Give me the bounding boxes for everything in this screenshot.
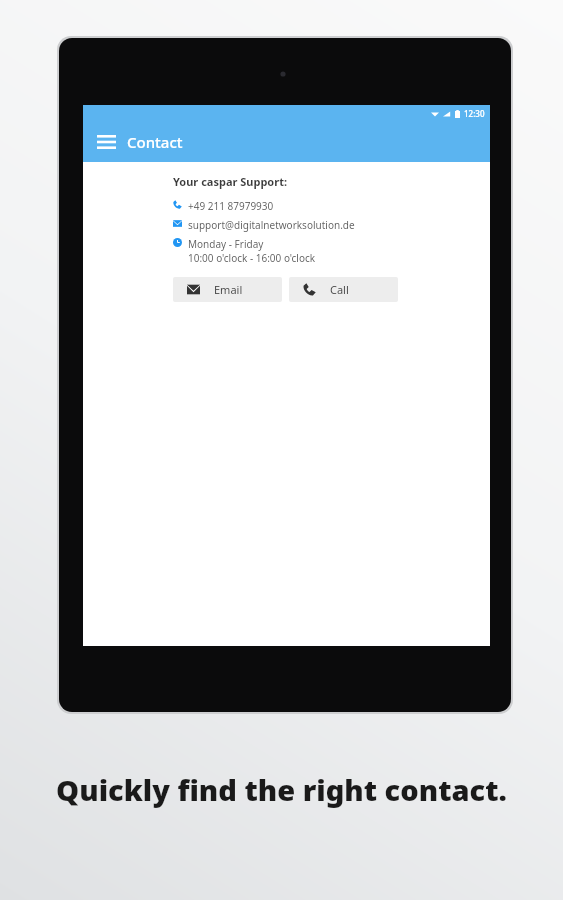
button[interactable]: Open navigation menu: [90, 126, 122, 158]
staticText: Quickly find the right contact.: [56, 770, 507, 809]
button[interactable]: Email: [173, 277, 282, 302]
staticText: Email: [214, 282, 243, 297]
button[interactable]: Call: [289, 277, 398, 302]
staticText: +49 211 87979930: [188, 199, 274, 213]
staticText: Monday - Friday: [188, 237, 264, 251]
staticText: Your caspar Support:: [173, 174, 288, 189]
staticText: 10:00 o'clock - 16:00 o'clock: [188, 251, 316, 265]
staticText: support@digitalnetworksolution.de: [188, 218, 355, 232]
staticText: Call: [330, 282, 349, 297]
staticText: Contact: [127, 132, 183, 152]
staticText: 12:30: [464, 108, 485, 119]
